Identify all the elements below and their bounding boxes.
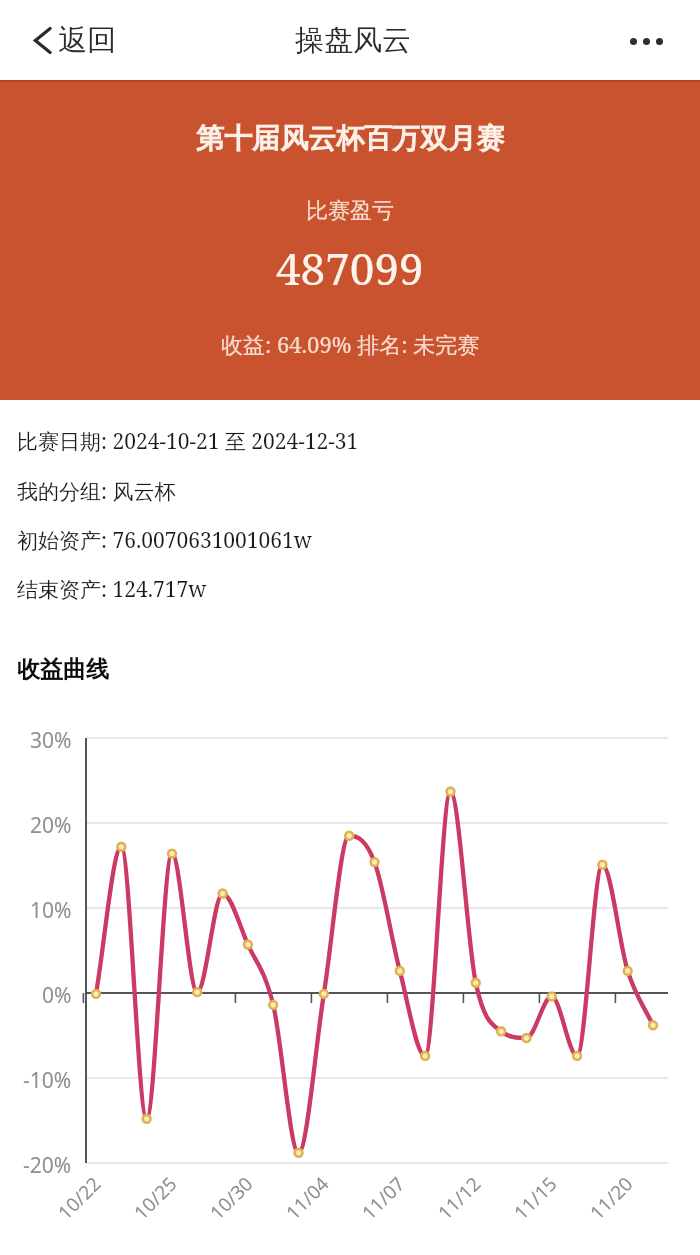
staticText: 结束资产: 124.717w <box>17 575 207 604</box>
staticText: 487099 <box>276 238 424 298</box>
staticText: 操盘风云 <box>295 22 411 59</box>
staticText: 我的分组: 风云杯 <box>17 477 176 506</box>
staticText: 比赛盈亏 <box>306 197 394 225</box>
button[interactable]: More options <box>616 11 676 71</box>
staticText: 比赛日期: 2024-10-21 至 2024-12-31 <box>17 427 359 456</box>
staticText: 收益曲线 <box>17 655 109 684</box>
staticText: 第十届风云杯百万双月赛 <box>196 121 504 156</box>
staticText: 收益: 64.09% 排名: 未完赛 <box>221 329 480 359</box>
button[interactable]: 返回 <box>22 10 130 70</box>
staticText: 返回 <box>58 22 116 59</box>
staticText: 初始资产: 76.0070631001061w <box>17 526 312 555</box>
